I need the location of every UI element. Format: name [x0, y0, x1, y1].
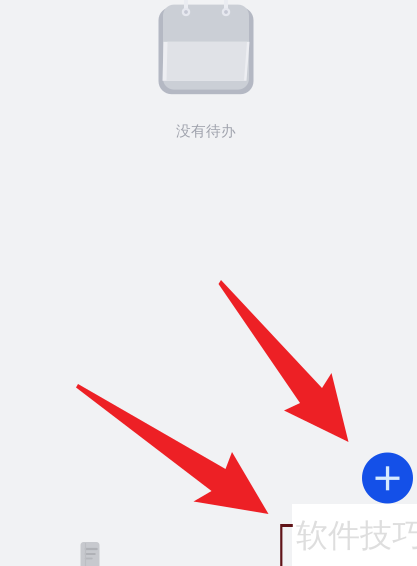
staticText: 软件技巧 [296, 516, 417, 555]
staticText: 没有待办 [176, 122, 236, 140]
button[interactable]: Add todo [362, 452, 413, 503]
button[interactable]: Lists [80, 542, 99, 566]
